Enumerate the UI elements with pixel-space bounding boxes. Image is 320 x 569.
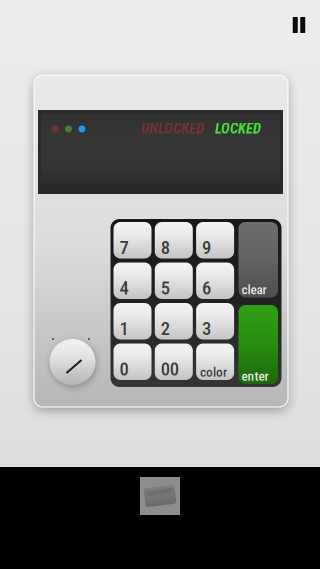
button[interactable]: 9: [196, 222, 234, 258]
button[interactable]: Pause: [284, 10, 314, 40]
staticText: 9: [202, 237, 211, 258]
button[interactable]: enter: [238, 305, 278, 384]
button[interactable]: 2: [155, 303, 193, 339]
staticText: 5: [161, 277, 170, 299]
staticText: enter: [241, 368, 268, 384]
button[interactable]: Dial: [49, 336, 103, 390]
staticText: 4: [119, 277, 128, 299]
staticText: 0: [119, 358, 128, 380]
staticText: 00: [161, 358, 179, 380]
staticText: color: [200, 364, 227, 380]
button[interactable]: Keypad device: [140, 477, 180, 515]
staticText: 1: [119, 318, 128, 339]
staticText: 3: [202, 318, 211, 339]
button[interactable]: 4: [113, 262, 151, 299]
button[interactable]: 1: [113, 303, 151, 339]
button[interactable]: clear: [238, 222, 278, 297]
button[interactable]: 8: [155, 222, 193, 258]
button[interactable]: 3: [196, 303, 234, 339]
button[interactable]: 7: [113, 222, 151, 258]
button[interactable]: 5: [155, 262, 193, 299]
button[interactable]: 6: [196, 262, 234, 299]
staticText: 8: [161, 237, 170, 258]
staticText: 6: [202, 277, 211, 299]
staticText: UNLOCKED: [141, 120, 204, 137]
staticText: LOCKED: [215, 120, 261, 137]
staticText: 2: [161, 318, 170, 339]
button[interactable]: color: [196, 343, 234, 380]
staticText: 7: [119, 237, 128, 258]
button[interactable]: 00: [155, 343, 193, 380]
button[interactable]: 0: [113, 343, 151, 380]
staticText: clear: [241, 282, 266, 297]
